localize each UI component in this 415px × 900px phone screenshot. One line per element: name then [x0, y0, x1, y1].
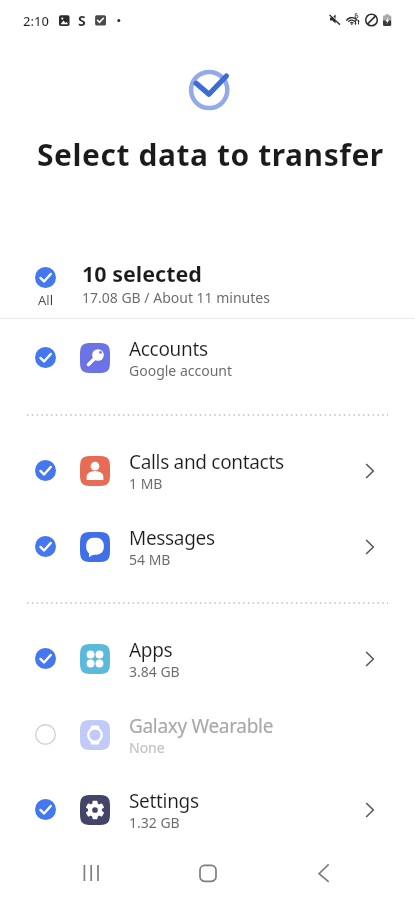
staticText: Messages [129, 525, 215, 551]
staticText: Apps [129, 637, 173, 663]
button[interactable]: All [0, 246, 415, 312]
staticText: Select data to transfer [37, 134, 384, 175]
button[interactable]: Calls and contacts [0, 433, 415, 508]
button[interactable]: Back [300, 849, 348, 897]
button[interactable]: Settings [0, 772, 415, 847]
staticText: S [78, 11, 86, 30]
button[interactable]: Accounts [0, 320, 415, 395]
button[interactable]: Messages [0, 509, 415, 584]
staticText: 17.08 GB / About 11 minutes [82, 288, 270, 307]
staticText: Accounts [129, 336, 208, 362]
button[interactable]: Open Settings details [352, 790, 392, 830]
staticText: 2:10 [23, 12, 49, 30]
button[interactable]: Apps [0, 621, 415, 696]
staticText: Google account [129, 361, 233, 380]
staticText: Calls and contacts [129, 449, 284, 475]
staticText: None [129, 738, 165, 757]
staticText: 1 MB [129, 474, 163, 493]
button[interactable]: Open Messages details [352, 527, 392, 567]
button[interactable]: Galaxy Wearable [0, 697, 415, 772]
button[interactable]: Recent apps [66, 849, 114, 897]
staticText: All [38, 291, 54, 309]
staticText: 54 MB [129, 550, 171, 569]
button[interactable]: Open Apps details [352, 639, 392, 679]
staticText: Galaxy Wearable [129, 713, 274, 739]
button[interactable]: Home [184, 849, 232, 897]
button[interactable]: Open Calls and contacts details [352, 451, 392, 491]
staticText: 10 selected [82, 259, 202, 288]
staticText: 3.84 GB [129, 662, 180, 681]
staticText: Settings [129, 788, 199, 814]
staticText: 1.32 GB [129, 813, 180, 832]
